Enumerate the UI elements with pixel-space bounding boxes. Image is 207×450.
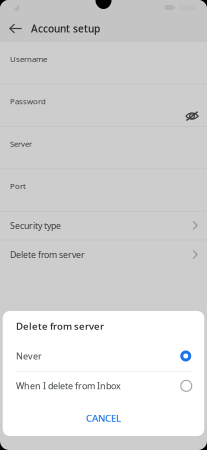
button[interactable]: CANCEL bbox=[3, 400, 204, 436]
button[interactable]: Back bbox=[0, 15, 31, 41]
staticText: Security type bbox=[10, 220, 61, 232]
staticText: Account setup bbox=[31, 22, 100, 35]
button[interactable]: Delete from server bbox=[0, 240, 207, 269]
staticText: Server bbox=[10, 138, 32, 149]
button[interactable]: Server bbox=[0, 127, 207, 169]
button[interactable]: Never bbox=[3, 341, 204, 371]
staticText: Delete from server bbox=[16, 319, 104, 333]
button[interactable]: Password bbox=[0, 84, 207, 127]
staticText: Port bbox=[10, 181, 26, 191]
button[interactable]: Username bbox=[0, 42, 207, 84]
staticText: 10:00 bbox=[178, 2, 196, 12]
staticText: When I delete from Inbox bbox=[16, 380, 121, 392]
button[interactable]: Security type bbox=[0, 212, 207, 240]
staticText: Password bbox=[10, 96, 46, 107]
button[interactable]: Port bbox=[0, 169, 207, 212]
staticText: Username bbox=[10, 53, 47, 64]
button[interactable]: When I delete from Inbox bbox=[3, 372, 204, 400]
staticText: Delete from server bbox=[10, 249, 85, 261]
staticText: Never bbox=[16, 350, 42, 362]
staticText: CANCEL bbox=[86, 411, 121, 425]
